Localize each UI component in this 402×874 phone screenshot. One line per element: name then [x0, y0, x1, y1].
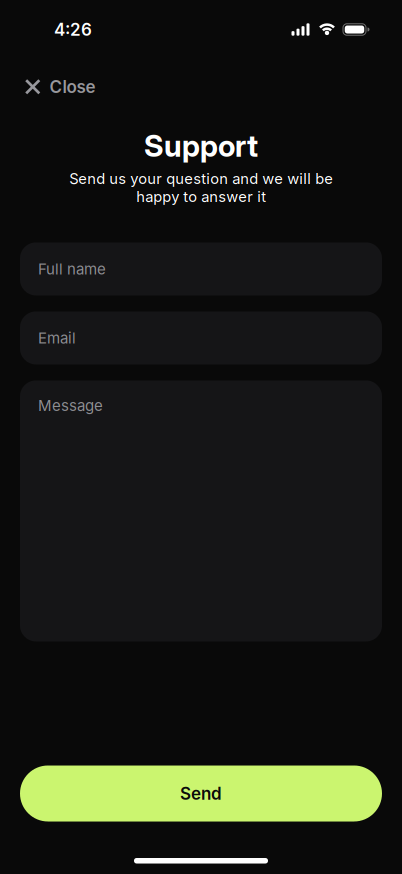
- button[interactable]: Email: [20, 311, 382, 364]
- staticText: Send us your question and we will be hap…: [69, 170, 333, 205]
- button[interactable]: Full name: [20, 242, 382, 295]
- staticText: Email: [38, 329, 76, 347]
- staticText: Send: [180, 783, 222, 804]
- button[interactable]: Message: [20, 380, 382, 641]
- staticText: Message: [38, 396, 103, 414]
- staticText: Full name: [38, 260, 106, 278]
- staticText: Support: [144, 128, 258, 164]
- staticText: Close: [49, 76, 95, 97]
- button[interactable]: Send: [20, 765, 382, 821]
- button[interactable]: Close: [25, 76, 95, 97]
- staticText: 4:26: [54, 19, 92, 40]
